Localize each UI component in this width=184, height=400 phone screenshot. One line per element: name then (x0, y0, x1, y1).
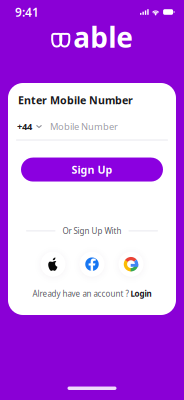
staticText: Mobile Number (50, 120, 118, 133)
button[interactable]: Sign Up (21, 158, 163, 182)
button[interactable]: Already have an account ? (26, 284, 157, 303)
button[interactable]: Sign up with Facebook (75, 248, 109, 280)
staticText: 9:41 (15, 4, 39, 20)
staticText: Already have an account ? (32, 288, 128, 299)
staticText: able (73, 18, 133, 56)
staticText: Or Sign Up With (62, 226, 121, 236)
button[interactable]: Sign up with Google (114, 248, 148, 280)
staticText: Login (130, 288, 151, 299)
staticText: +44 (17, 120, 32, 133)
button[interactable]: Sign up with Apple (36, 248, 70, 280)
staticText: Enter Mobile Number (18, 93, 133, 107)
staticText: Sign Up (71, 162, 112, 177)
